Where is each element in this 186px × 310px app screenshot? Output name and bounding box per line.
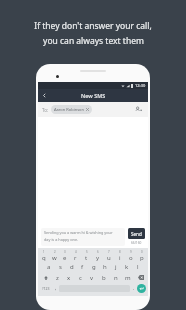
button[interactable]: h (99, 261, 110, 272)
staticText: q (42, 254, 46, 261)
staticText: 2 (54, 250, 56, 254)
staticText: New SMS (81, 92, 106, 99)
button[interactable]: l (132, 261, 143, 272)
button[interactable]: ?123 (40, 283, 52, 294)
staticText: z (56, 274, 59, 282)
button[interactable]: 4 (70, 250, 81, 261)
staticText: o (129, 254, 133, 261)
button[interactable]: n (110, 272, 122, 283)
staticText: n (114, 274, 118, 282)
staticText: i (119, 254, 121, 261)
staticText: l (137, 263, 139, 271)
button[interactable]: 7 (103, 250, 114, 261)
button[interactable]: 1 (39, 250, 49, 261)
button[interactable]: f (77, 261, 88, 272)
staticText: 5 (86, 250, 88, 254)
button[interactable]: Sending you a warm hi & wishing your (41, 228, 125, 246)
staticText: v (90, 274, 94, 282)
staticText: 8 (119, 250, 121, 254)
button[interactable]: c (74, 272, 86, 283)
staticText: f (81, 263, 84, 271)
button[interactable]: Send (128, 228, 145, 239)
button[interactable]: 9 (125, 250, 136, 261)
staticText: 9 (130, 250, 132, 254)
button[interactable]: b (98, 272, 110, 283)
staticText: d (70, 263, 74, 271)
staticText: s (59, 263, 62, 271)
staticText: j (115, 263, 117, 271)
button[interactable]: 8 (114, 250, 125, 261)
button[interactable]: Shift (39, 272, 52, 283)
staticText: Aaron Robinson (54, 107, 84, 112)
staticText: 12:30 (135, 83, 146, 88)
staticText: h (103, 263, 107, 271)
button[interactable]: a (43, 261, 55, 272)
staticText: w (52, 254, 57, 261)
button[interactable]: k (121, 261, 132, 272)
staticText: c (79, 274, 82, 282)
staticText: Sending you a warm hi & wishing your (44, 230, 113, 235)
button[interactable]: x (63, 272, 74, 283)
button[interactable]: 5 (81, 250, 92, 261)
staticText: 1 (43, 250, 45, 254)
button[interactable]: z (52, 272, 63, 283)
staticText: 3 (64, 250, 66, 254)
button[interactable]: d (66, 261, 77, 272)
staticText: Send (131, 231, 142, 237)
button[interactable]: 0 (136, 250, 147, 261)
button[interactable]: j (110, 261, 121, 272)
staticText: y (96, 254, 100, 261)
staticText: k (125, 263, 129, 271)
staticText: 6 (97, 250, 99, 254)
staticText: 0 (141, 250, 143, 254)
staticText: day is a happy one. (44, 237, 79, 242)
staticText: To: (42, 107, 49, 113)
staticText: 66/160 (131, 241, 142, 245)
staticText: x (67, 274, 71, 282)
button[interactable]: 6 (92, 250, 103, 261)
button[interactable]: Aaron Robinson (54, 107, 89, 112)
staticText: If they don't answer your call, (34, 20, 152, 32)
button[interactable]: 2 (49, 250, 59, 261)
staticText: t (85, 254, 88, 261)
button[interactable]: 3 (59, 250, 70, 261)
staticText: m (125, 274, 131, 282)
button[interactable]: Add contact (133, 104, 144, 115)
button[interactable]: Enter (137, 284, 146, 293)
staticText: e (63, 254, 67, 261)
staticText: . (133, 285, 135, 292)
button[interactable]: s (55, 261, 66, 272)
staticText: , (55, 285, 57, 292)
staticText: ?123 (42, 286, 50, 291)
button[interactable]: m (122, 272, 134, 283)
button[interactable]: , (52, 283, 59, 294)
staticText: b (102, 274, 106, 282)
staticText: p (140, 254, 144, 261)
staticText: r (74, 254, 77, 261)
button[interactable]: v (86, 272, 98, 283)
button[interactable]: g (88, 261, 99, 272)
staticText: u (107, 254, 111, 261)
staticText: you can always text them (43, 35, 144, 47)
button[interactable]: . (130, 283, 137, 294)
staticText: g (92, 263, 96, 271)
staticText: a (47, 263, 51, 271)
staticText: 4 (75, 250, 77, 254)
button[interactable]: Back (38, 89, 51, 102)
button[interactable]: Backspace (134, 272, 147, 283)
staticText: 7 (108, 250, 110, 254)
